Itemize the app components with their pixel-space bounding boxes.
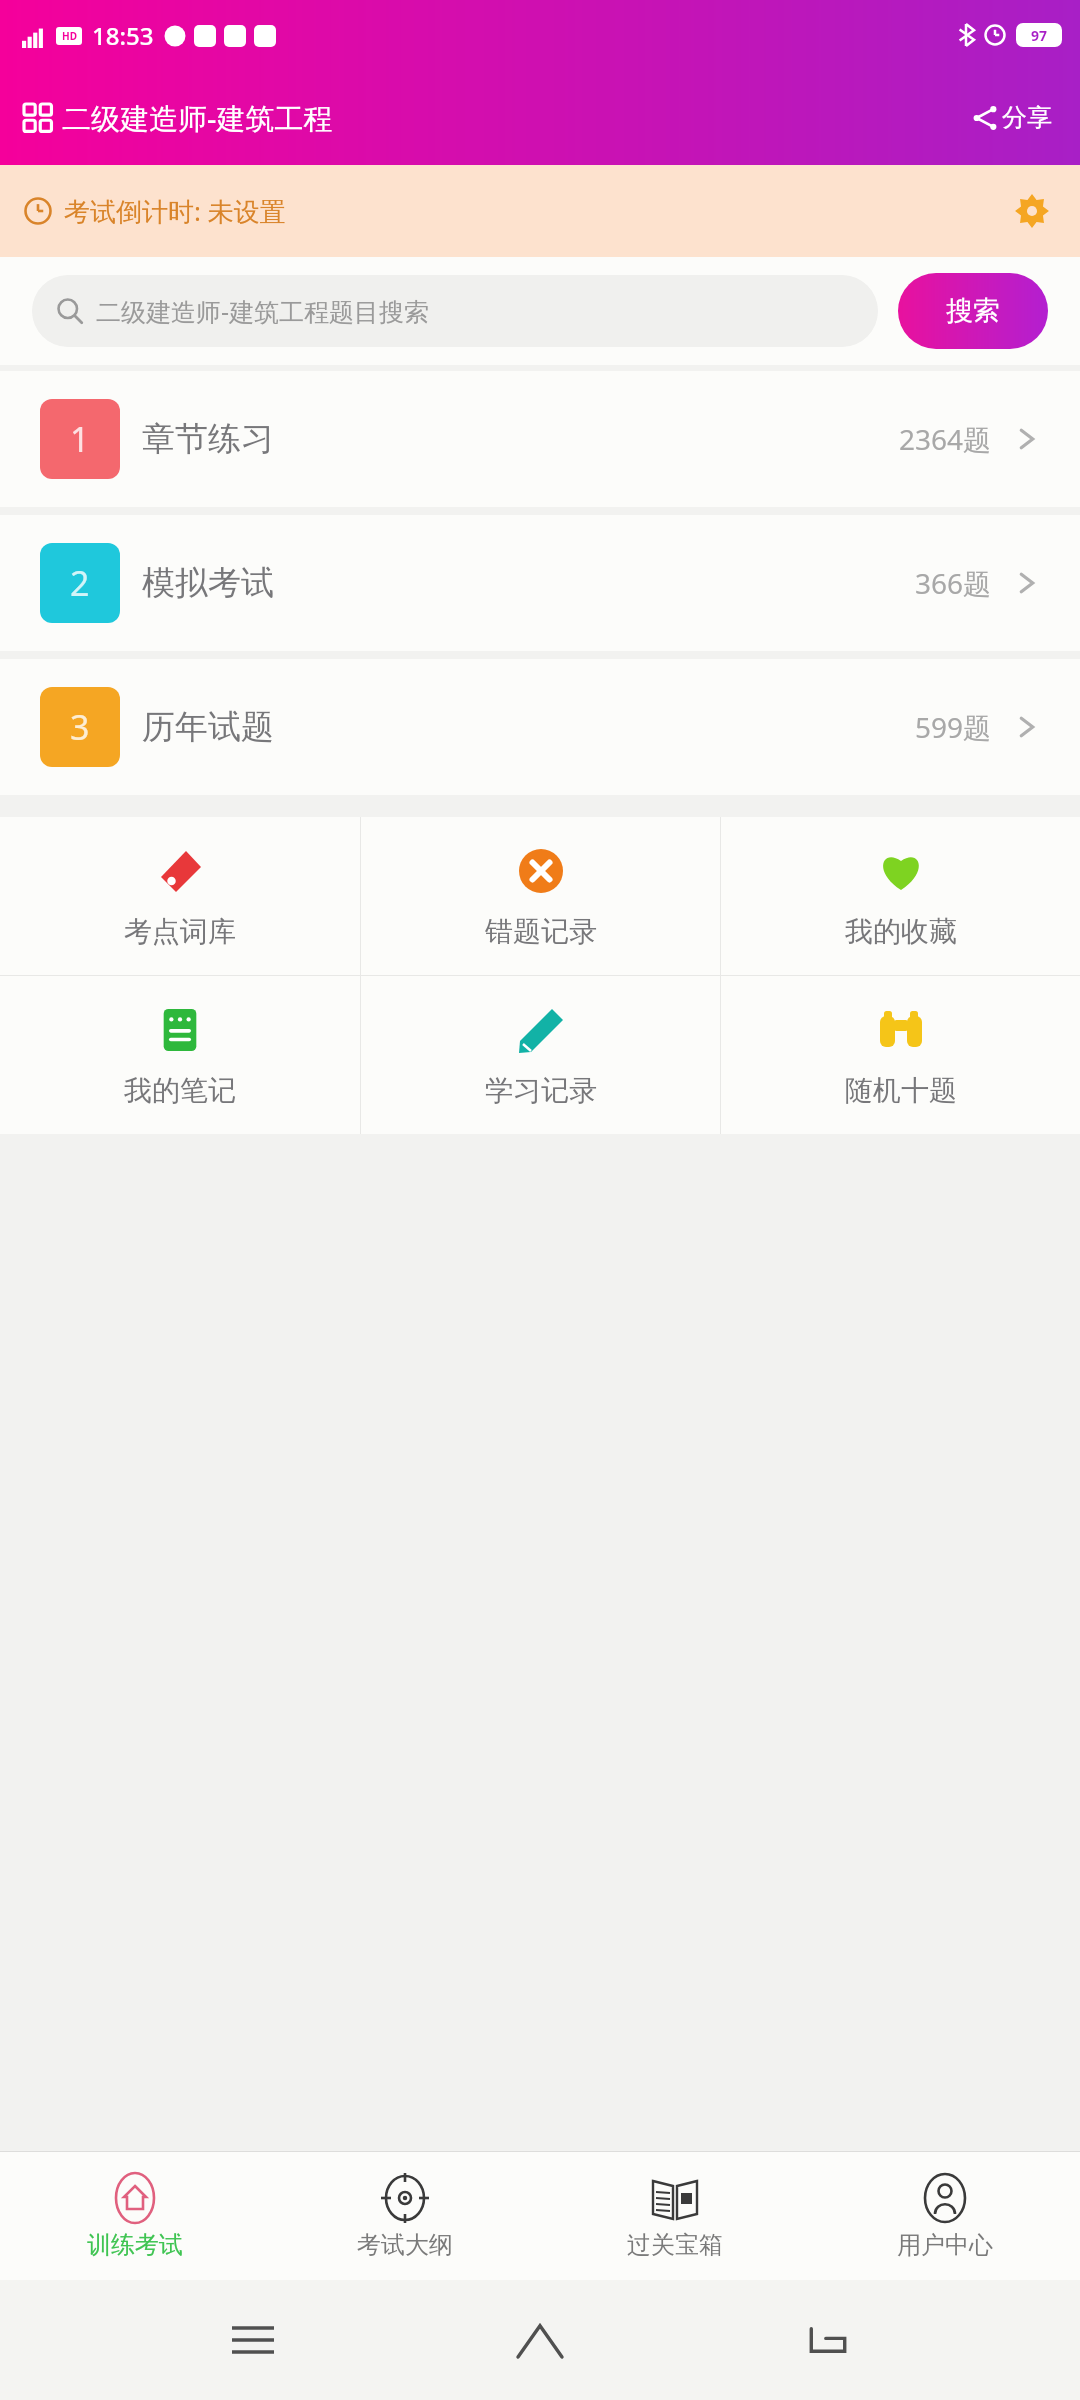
staticText: 我的笔记 — [124, 1073, 236, 1108]
button[interactable]: 错题记录 — [361, 817, 720, 975]
staticText: 用户中心 — [897, 2230, 993, 2260]
button[interactable]: 搜索 — [898, 273, 1048, 349]
staticText: 分享 — [1002, 102, 1052, 133]
staticText: 二级建造师-建筑工程 — [62, 98, 333, 138]
button[interactable]: 1 — [0, 371, 1080, 507]
button[interactable]: 3 — [0, 659, 1080, 795]
staticText: 随机十题 — [845, 1073, 957, 1108]
staticText: HD — [62, 29, 77, 43]
button[interactable]: 用户中心 — [810, 2152, 1080, 2280]
staticText: 2 — [70, 560, 90, 606]
staticText: 搜索 — [946, 294, 1000, 328]
staticText: 2364题 — [899, 420, 992, 458]
staticText: 366题 — [915, 564, 992, 602]
button[interactable]: 我的收藏 — [721, 817, 1080, 975]
button[interactable]: 考点词库 — [0, 817, 360, 975]
staticText: 过关宝箱 — [627, 2230, 723, 2260]
button[interactable]: Home — [505, 2305, 575, 2375]
staticText: 考点词库 — [124, 914, 236, 949]
button[interactable]: 2 — [0, 515, 1080, 651]
staticText: 学习记录 — [485, 1073, 597, 1108]
staticText: 考试倒计时: 未设置 — [64, 193, 286, 229]
staticText: 考试大纲 — [357, 2230, 453, 2260]
staticText: 模拟考试 — [142, 562, 274, 604]
staticText: 1 — [70, 416, 90, 462]
staticText: 训练考试 — [87, 2230, 183, 2260]
button[interactable]: 二级建造师-建筑工程题目搜索 — [32, 275, 878, 347]
staticText: 二级建造师-建筑工程题目搜索 — [96, 294, 430, 328]
button[interactable]: 我的笔记 — [0, 976, 360, 1134]
staticText: 错题记录 — [485, 914, 597, 949]
button[interactable]: Recents — [218, 2305, 288, 2375]
button[interactable]: 分享 — [966, 96, 1058, 139]
staticText: 3 — [70, 704, 90, 750]
button[interactable]: 学习记录 — [361, 976, 720, 1134]
button[interactable]: 训练考试 — [0, 2152, 270, 2280]
staticText: 97 — [1031, 26, 1048, 45]
button[interactable]: 随机十题 — [721, 976, 1080, 1134]
button[interactable]: Back — [793, 2305, 863, 2375]
staticText: 历年试题 — [142, 706, 274, 748]
staticText: 我的收藏 — [845, 914, 957, 949]
button[interactable]: 设置 — [1008, 187, 1056, 235]
staticText: 章节练习 — [142, 418, 274, 460]
staticText: 18:53 — [92, 19, 154, 52]
staticText: 599题 — [915, 708, 992, 746]
button[interactable]: 过关宝箱 — [540, 2152, 810, 2280]
button[interactable]: 考试大纲 — [270, 2152, 540, 2280]
